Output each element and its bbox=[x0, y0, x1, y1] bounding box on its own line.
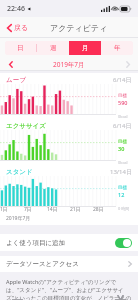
other: よく使う項目に追加 オン bbox=[115, 238, 132, 248]
staticText: 年 bbox=[114, 44, 121, 52]
staticText: 13/14日 bbox=[110, 168, 132, 176]
button[interactable]: 日 bbox=[5, 41, 36, 55]
staticText: 21日 bbox=[70, 206, 81, 213]
staticText: 2019年7月 bbox=[6, 215, 31, 222]
staticText: データソースとアクセス bbox=[6, 260, 79, 268]
staticText: 戻る bbox=[14, 23, 29, 32]
staticText: 7日 bbox=[24, 206, 32, 213]
staticText: 14日 bbox=[47, 206, 58, 213]
button[interactable]: 次の月 bbox=[123, 60, 132, 69]
button[interactable]: 月 bbox=[69, 41, 101, 55]
staticText: 目標 bbox=[118, 93, 127, 99]
button[interactable]: データソースとアクセス bbox=[0, 256, 138, 272]
button[interactable]: 前の月 bbox=[6, 60, 15, 69]
staticText: 週 bbox=[50, 44, 57, 52]
staticText: ムーブ bbox=[6, 76, 26, 84]
staticText: 目標 bbox=[118, 185, 127, 191]
button[interactable]: 週 bbox=[37, 41, 69, 55]
staticText: 22:46 bbox=[7, 4, 25, 14]
staticText: 6/14日 bbox=[113, 122, 132, 130]
staticText: 目標 bbox=[118, 139, 127, 145]
staticText: 6/14日 bbox=[113, 76, 132, 84]
staticText: Apple Watchの"アクティビティ"のリングでは、"スタンド"、"ムーブ"… bbox=[6, 278, 132, 300]
staticText: 590 bbox=[118, 99, 128, 106]
staticText: よく使う項目に追加 bbox=[6, 239, 66, 247]
staticText: 日 bbox=[17, 44, 24, 52]
staticText: 0kcal bbox=[118, 160, 128, 165]
staticText: 2019年7月 bbox=[53, 60, 85, 69]
staticText: 月 bbox=[82, 44, 89, 52]
staticText: 30 bbox=[118, 145, 125, 152]
staticText: スタンド bbox=[6, 168, 33, 176]
button[interactable]: 戻る bbox=[5, 21, 31, 34]
staticText: 28日 bbox=[93, 206, 104, 213]
button[interactable]: よく使う項目に追加 bbox=[0, 234, 138, 251]
staticText: アクティビティ bbox=[50, 23, 108, 33]
staticText: エクササイズ bbox=[6, 122, 46, 130]
staticText: 0kcal bbox=[118, 114, 128, 119]
staticText: 1日 bbox=[0, 206, 8, 213]
button[interactable]: 年 bbox=[101, 41, 133, 55]
staticText: 0 時間 bbox=[118, 206, 130, 211]
staticText: 12 bbox=[118, 191, 125, 198]
